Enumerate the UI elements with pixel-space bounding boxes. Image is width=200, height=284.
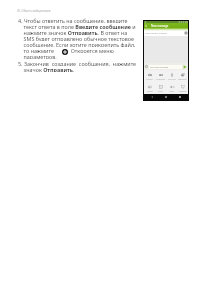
staticText: Video (158, 90, 163, 92)
other: Slideshow (181, 73, 185, 77)
other: Back (151, 96, 153, 98)
staticText: Slideshow (178, 78, 187, 80)
button[interactable]: Video (155, 82, 166, 94)
staticText: 5. Закончив создание сообщения, нажмите (18, 60, 137, 66)
button[interactable]: Slideshow (177, 70, 188, 82)
staticText: Image (147, 90, 153, 92)
button[interactable]: Type text message (149, 65, 182, 69)
staticText: Camera (146, 78, 153, 80)
other: Image (148, 85, 152, 89)
staticText: 35. Обмен сообщениями (17, 9, 51, 13)
staticText: текст ответа в поле Введите сообщение и (18, 23, 136, 29)
other: Camcorder (159, 73, 163, 77)
other: Camera (148, 73, 152, 77)
other: Emoji (145, 65, 148, 68)
button[interactable]: Camera (144, 70, 155, 82)
button[interactable]: Type name or number (144, 31, 188, 36)
staticText: Contacts (179, 90, 187, 92)
button[interactable]: Voice rec. (166, 70, 177, 82)
button[interactable]: Contacts (177, 82, 188, 94)
staticText: Type text message (150, 66, 169, 69)
button[interactable]: Image (144, 82, 155, 94)
other: Send (183, 65, 187, 69)
staticText: то нажмите Откроется меню (18, 47, 114, 53)
staticText: Camcorder (156, 78, 166, 80)
staticText: SMS будет отправлено обычное текстовое (18, 35, 134, 41)
staticText: Type name or number (145, 32, 167, 35)
button[interactable]: Audio (166, 82, 177, 94)
other: Contacts (181, 85, 185, 89)
staticText: параметров. (18, 53, 57, 59)
other: Video (159, 85, 163, 89)
button[interactable]: Back (144, 23, 188, 28)
button[interactable]: Camcorder (155, 70, 166, 82)
staticText: 4. Чтобы ответить на сообщение, введите (18, 17, 128, 23)
staticText: Audio (169, 90, 174, 92)
other: Attach (62, 49, 68, 55)
staticText: сообщение. Если хотите прикрепить файл, (18, 41, 136, 47)
other: Audio (170, 85, 174, 89)
staticText: Voice rec. (168, 78, 176, 80)
other: Voice rec. (170, 73, 174, 77)
staticText: нажмите значок Отправить. В ответ на (18, 29, 128, 35)
other: Recents (179, 96, 181, 98)
staticText: New message (151, 24, 169, 28)
staticText: значок Отправить. (18, 66, 75, 72)
